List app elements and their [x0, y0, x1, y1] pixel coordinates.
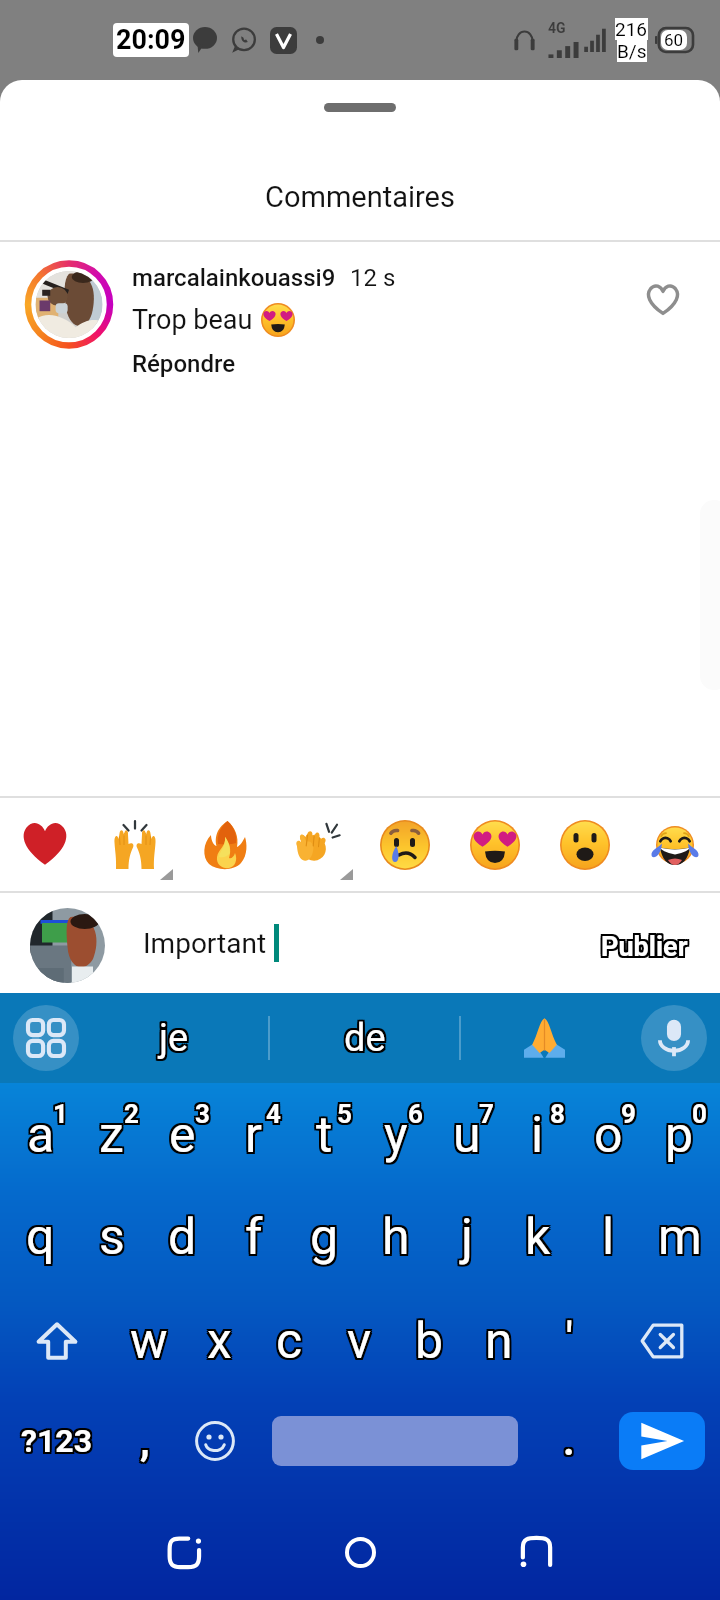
staticText: a — [25, 1108, 53, 1167]
staticText: 9 — [621, 1099, 636, 1129]
staticText: r — [245, 1106, 262, 1165]
button[interactable]: clap — [270, 798, 360, 891]
staticText: , — [140, 1418, 150, 1465]
button[interactable]: q — [5, 1199, 76, 1275]
button[interactable]: p — [644, 1097, 715, 1173]
button[interactable]: Voice input — [641, 1005, 707, 1071]
button[interactable]: e — [147, 1097, 218, 1173]
staticText: 3 — [197, 1097, 212, 1127]
button[interactable]: u — [431, 1097, 502, 1173]
button[interactable]: Emoji — [175, 1401, 255, 1481]
button[interactable]: z — [76, 1097, 147, 1173]
button[interactable]: Home — [320, 1512, 400, 1592]
button[interactable]: l — [573, 1199, 644, 1275]
button[interactable]: marcalainkouassi9 — [0, 242, 720, 378]
button[interactable]: love — [450, 798, 540, 891]
button[interactable]: Like comment — [639, 275, 687, 323]
button[interactable]: i — [502, 1097, 573, 1173]
staticText: . — [561, 1418, 573, 1465]
button[interactable]: h — [360, 1199, 431, 1275]
staticText: v — [345, 1314, 370, 1373]
button[interactable] — [461, 993, 641, 1083]
staticText: ' — [565, 1314, 574, 1373]
button[interactable]: b — [394, 1303, 464, 1379]
staticText: b — [417, 1310, 446, 1369]
staticText: v — [349, 1312, 374, 1371]
staticText: f — [247, 1210, 265, 1269]
button[interactable]: ' — [534, 1303, 604, 1379]
staticText: d — [170, 1206, 199, 1265]
staticText: k — [527, 1210, 553, 1269]
button[interactable]: Répondre — [132, 350, 236, 378]
button[interactable]: d — [147, 1199, 218, 1275]
staticText: w — [130, 1312, 168, 1371]
button[interactable]: j — [431, 1199, 502, 1275]
staticText: c — [274, 1314, 301, 1373]
staticText: x — [205, 1312, 230, 1371]
button[interactable]: Back — [144, 1512, 224, 1592]
button[interactable]: . — [518, 1401, 619, 1481]
staticText: f — [243, 1208, 261, 1267]
button[interactable]: ?123 — [0, 1401, 114, 1481]
staticText: q — [28, 1206, 57, 1265]
button[interactable]: je — [79, 993, 268, 1083]
button[interactable]: w — [114, 1303, 184, 1379]
button[interactable]: c — [254, 1303, 324, 1379]
button[interactable]: s — [76, 1199, 147, 1275]
staticText: e — [171, 1106, 198, 1165]
button[interactable]: a — [5, 1097, 76, 1173]
button[interactable]: Backspace — [604, 1303, 720, 1379]
staticText: k — [527, 1206, 553, 1265]
staticText: b — [417, 1314, 446, 1373]
button[interactable]: raise — [90, 798, 180, 891]
button[interactable]: , — [114, 1401, 175, 1481]
button[interactable]: t — [289, 1097, 360, 1173]
button[interactable]: wow — [540, 798, 630, 891]
button[interactable]: m — [644, 1199, 715, 1275]
staticText: 2 — [122, 1097, 137, 1127]
button[interactable]: g — [289, 1199, 360, 1275]
button[interactable]: o — [573, 1097, 644, 1173]
button[interactable]: Shift — [0, 1303, 114, 1379]
button[interactable]: v — [324, 1303, 394, 1379]
button[interactable]: cry — [360, 798, 450, 891]
staticText: h — [384, 1210, 412, 1269]
staticText: , — [138, 1416, 148, 1463]
button[interactable]: Recents — [496, 1512, 576, 1592]
staticText: 3 — [193, 1099, 208, 1129]
button[interactable]: lol — [630, 798, 720, 891]
button[interactable]: x — [184, 1303, 254, 1379]
staticText: 5 — [337, 1097, 352, 1127]
staticText: o — [594, 1108, 623, 1167]
button[interactable]: fire — [180, 798, 270, 891]
staticText: i — [531, 1108, 544, 1167]
button[interactable]: f — [218, 1199, 289, 1275]
staticText: v — [347, 1310, 372, 1369]
staticText: Publier — [601, 933, 688, 965]
button[interactable]: k — [502, 1199, 573, 1275]
button[interactable]: r — [218, 1097, 289, 1173]
staticText: , — [142, 1420, 152, 1467]
staticText: f — [245, 1206, 263, 1265]
button[interactable]: heart — [0, 798, 90, 891]
staticText: 1 — [55, 1099, 70, 1129]
staticText: je — [161, 1018, 191, 1063]
button[interactable]: Publier — [591, 917, 700, 969]
staticText: w — [128, 1310, 166, 1369]
button[interactable]: Space — [272, 1416, 518, 1466]
button[interactable]: Send — [619, 1412, 705, 1470]
staticText: 9 — [619, 1099, 634, 1129]
button[interactable]: y — [360, 1097, 431, 1173]
button[interactable]: de — [270, 993, 459, 1083]
staticText: 3 — [195, 1101, 210, 1131]
staticText: k — [523, 1206, 549, 1265]
staticText: , — [138, 1418, 148, 1465]
staticText: b — [415, 1312, 444, 1371]
staticText: d — [170, 1210, 199, 1269]
staticText: c — [274, 1310, 301, 1369]
button[interactable]: Keyboard menu — [13, 1005, 79, 1071]
button[interactable]: n — [464, 1303, 534, 1379]
staticText: 0 — [694, 1097, 709, 1127]
staticText: w — [132, 1310, 170, 1369]
staticText: i — [531, 1104, 544, 1163]
